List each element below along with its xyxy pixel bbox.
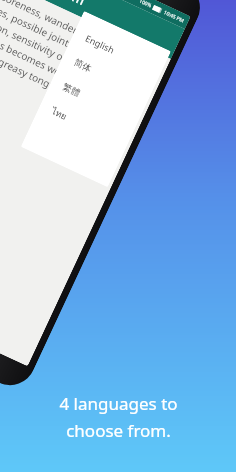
staticText: Select Symptom: [0, 0, 88, 9]
staticText: Pain, soreness, wandering pain of muscle…: [0, 0, 160, 142]
staticText: English: [84, 32, 117, 56]
button[interactable]: 简体: [57, 43, 156, 108]
staticText: 4 languages to: [59, 392, 178, 415]
button[interactable]: Select Symptom: [0, 0, 185, 59]
staticText: 繁體: [61, 81, 82, 98]
button[interactable]: ไทย: [35, 92, 133, 157]
staticText: ไทย: [49, 104, 69, 124]
staticText: 简体: [73, 56, 94, 74]
staticText: 100%: [138, 0, 153, 9]
button[interactable]: 繁體: [46, 68, 144, 133]
button[interactable]: English: [69, 19, 167, 84]
staticText: 10:45 PM: [162, 9, 185, 25]
staticText: choose from.: [66, 419, 171, 442]
